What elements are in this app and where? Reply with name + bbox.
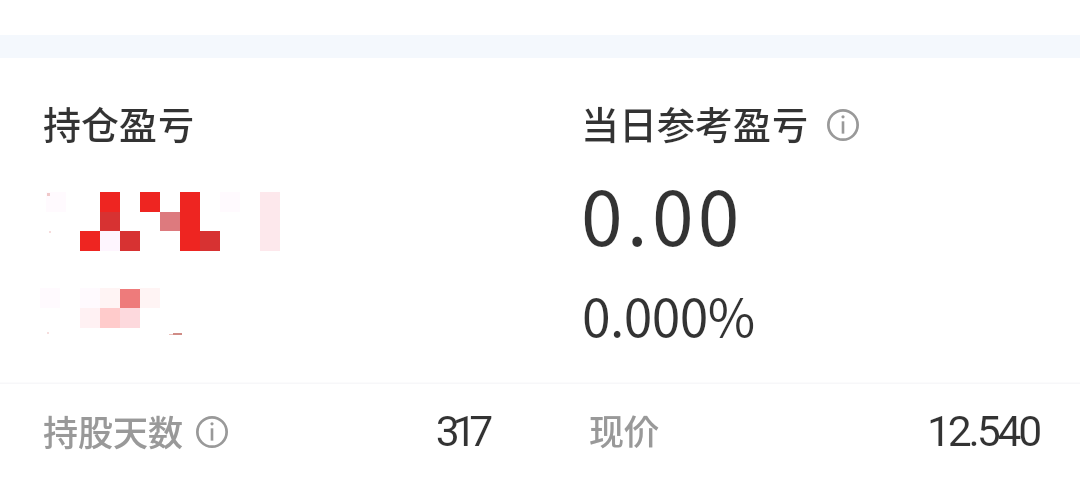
- staticText: 0.000%: [582, 277, 755, 352]
- button[interactable]: 持股天数说明: [196, 416, 228, 448]
- button[interactable]: [0, 70, 540, 382]
- staticText: 持股天数: [43, 405, 184, 456]
- staticText: 317: [403, 406, 486, 456]
- staticText: 0.00: [581, 159, 744, 268]
- staticText: 现价: [589, 404, 660, 455]
- staticText: 12.540: [838, 406, 1039, 456]
- staticText: 持仓盈亏: [43, 95, 196, 150]
- button[interactable]: [540, 70, 1080, 382]
- button[interactable]: [540, 384, 1080, 482]
- button[interactable]: [0, 384, 540, 482]
- staticText: 当日参考盈亏: [581, 95, 810, 150]
- button[interactable]: 当日参考盈亏说明: [827, 109, 859, 141]
